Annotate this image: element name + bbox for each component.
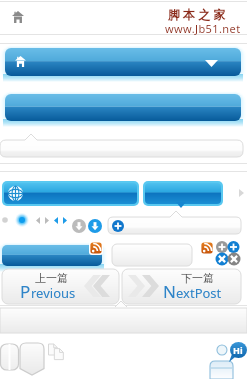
- button[interactable]: 上一篇: [2, 269, 119, 304]
- staticText: N: [163, 280, 176, 303]
- staticText: 脚 本 之 家: [168, 6, 226, 22]
- staticText: 上一篇: [35, 271, 68, 285]
- staticText: www.Jb51.net: [165, 21, 241, 36]
- staticText: extPost: [176, 284, 222, 302]
- staticText: P: [20, 280, 31, 303]
- button[interactable]: 下一篇: [122, 269, 241, 304]
- staticText: Hi: [233, 344, 243, 356]
- staticText: 下一篇: [181, 271, 214, 285]
- staticText: revious: [31, 284, 76, 302]
